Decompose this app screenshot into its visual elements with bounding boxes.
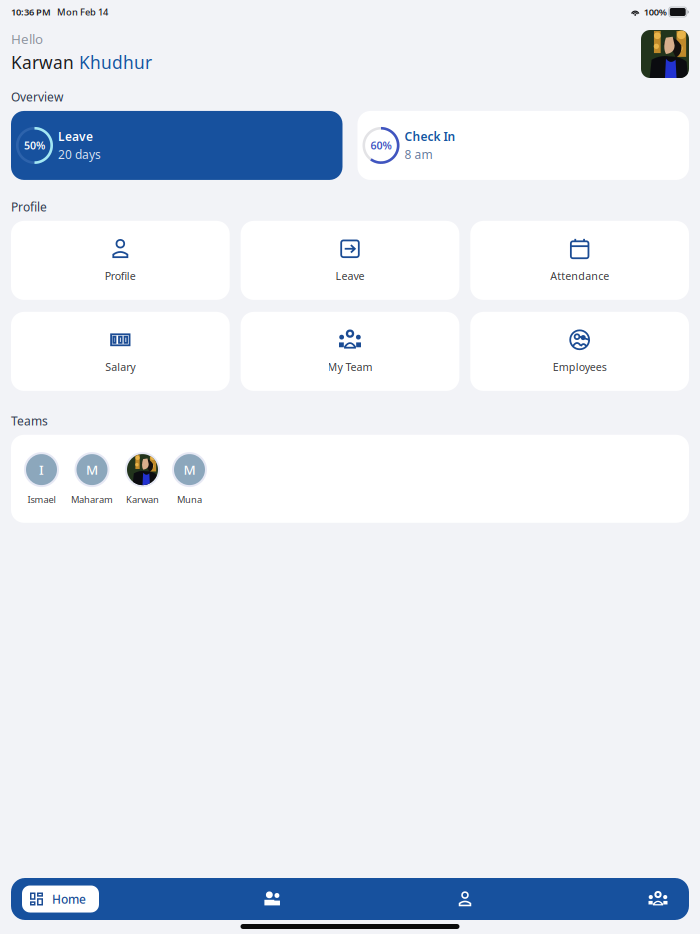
staticText: Profile (11, 199, 47, 215)
staticText: Leave (335, 269, 364, 283)
staticText: Overview (11, 89, 63, 105)
button[interactable]: M (172, 452, 207, 505)
button[interactable]: My Team (241, 312, 459, 391)
staticText: Khudhur (79, 51, 152, 74)
button[interactable]: M (71, 452, 113, 505)
button[interactable]: Employees (470, 312, 689, 391)
staticText: Employees (553, 360, 607, 374)
staticText: 8 am (404, 146, 432, 162)
button[interactable]: Profile (445, 882, 485, 916)
staticText: Hello (11, 30, 43, 48)
staticText: M (86, 461, 98, 478)
staticText: My Team (327, 360, 372, 374)
staticText: Leave (58, 128, 93, 144)
staticText: 60% (370, 138, 391, 153)
button[interactable]: 50% (11, 111, 342, 180)
button[interactable]: I (24, 452, 59, 505)
button[interactable]: Attendance (470, 221, 689, 300)
button[interactable]: Profile photo (641, 30, 689, 78)
staticText: Check In (404, 128, 455, 144)
staticText: I (39, 461, 44, 478)
staticText: Ismael (27, 493, 55, 505)
button[interactable]: Leave (241, 221, 459, 300)
button[interactable]: Karwan (125, 452, 160, 505)
button[interactable]: Profile (11, 221, 230, 300)
staticText: Attendance (550, 269, 609, 283)
staticText: Salary (105, 360, 135, 374)
button[interactable]: Employees (638, 882, 678, 916)
button[interactable]: Salary (11, 312, 230, 391)
staticText: Karwan (11, 51, 74, 74)
button[interactable]: Teams (252, 882, 292, 916)
staticText: Teams (11, 413, 48, 429)
staticText: 50% (24, 138, 45, 153)
button[interactable]: 60% (357, 111, 689, 180)
staticText: Home (52, 891, 86, 907)
staticText: M (183, 461, 195, 478)
staticText: 100% (640, 6, 667, 18)
staticText: Maharam (71, 493, 113, 505)
staticText: 10:36 PM (11, 6, 51, 18)
staticText: Muna (177, 493, 202, 505)
staticText: Mon Feb 14 (51, 6, 108, 18)
staticText: Karwan (126, 493, 159, 505)
staticText: Profile (105, 269, 136, 283)
staticText: 20 days (58, 146, 101, 162)
button[interactable]: Home (22, 885, 99, 912)
